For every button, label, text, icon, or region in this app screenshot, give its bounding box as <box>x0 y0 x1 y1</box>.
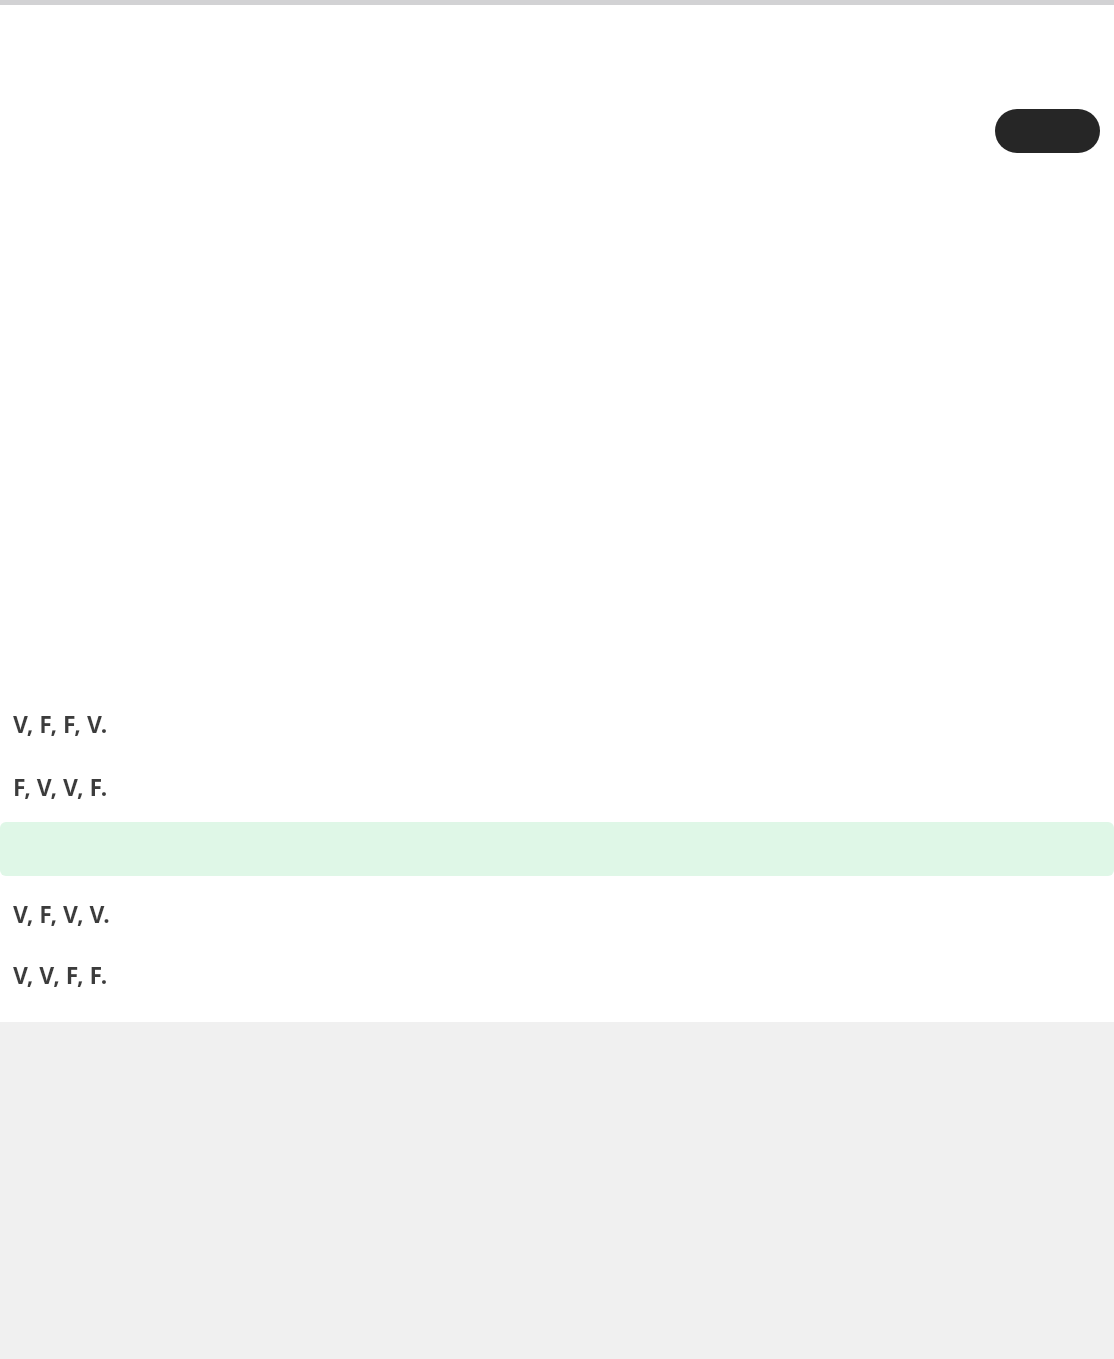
button[interactable]: V, V, F, F. <box>0 951 1114 997</box>
staticText: F, V, V, F. <box>13 771 108 802</box>
staticText: V, V, F, F. <box>13 959 108 990</box>
button[interactable]: Action <box>995 109 1100 153</box>
staticText: V, F, V, V. <box>13 898 110 929</box>
button[interactable]: V, F, V, V. <box>0 890 1114 936</box>
button[interactable]: F, V, V, F. <box>0 763 1114 809</box>
staticText: V, F, F, V. <box>13 708 108 739</box>
button[interactable]: V, F, F, V. <box>0 700 1114 746</box>
